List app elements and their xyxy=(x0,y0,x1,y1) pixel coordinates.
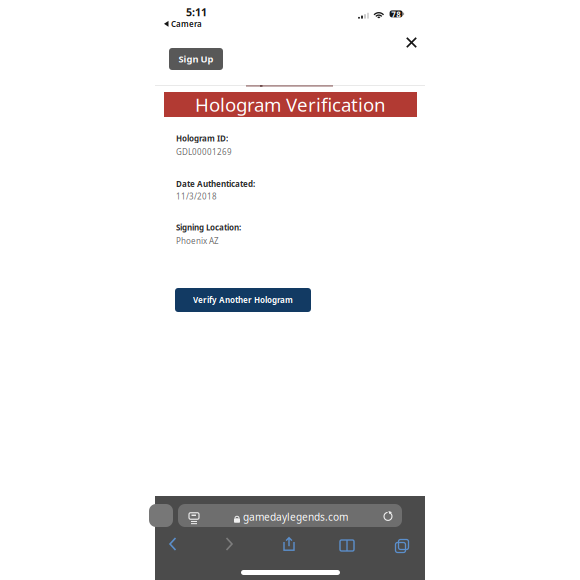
staticText: Sign Up xyxy=(178,53,213,65)
staticText: Signing Location: xyxy=(176,222,241,233)
staticText: Hologram Verification xyxy=(195,92,386,117)
button[interactable]: Forward xyxy=(224,537,234,551)
button[interactable]: Camera xyxy=(164,18,202,29)
button[interactable]: Close xyxy=(406,37,417,48)
button[interactable]: Back xyxy=(168,537,178,551)
button[interactable]: Page settings xyxy=(189,510,199,522)
button[interactable]: Share xyxy=(283,537,295,551)
staticText: Camera xyxy=(171,18,202,29)
button[interactable]: Sign Up xyxy=(169,48,223,70)
button[interactable]: Bookmarks xyxy=(340,537,354,551)
button[interactable]: Reload xyxy=(383,511,393,521)
staticText: 11/3/2018 xyxy=(176,191,217,202)
staticText: gamedaylegends.com xyxy=(243,510,348,524)
button[interactable]: Tabs xyxy=(394,537,407,551)
staticText: Verify Another Hologram xyxy=(193,295,293,305)
staticText: 5:11 xyxy=(186,5,207,19)
button[interactable]: Verify Another Hologram xyxy=(175,288,311,312)
staticText: Hologram ID: xyxy=(176,133,228,144)
staticText: Phoenix AZ xyxy=(176,235,219,246)
staticText: Date Authenticated: xyxy=(176,178,255,189)
staticText: 78 xyxy=(391,9,401,20)
staticText: GDL00001269 xyxy=(176,146,232,157)
